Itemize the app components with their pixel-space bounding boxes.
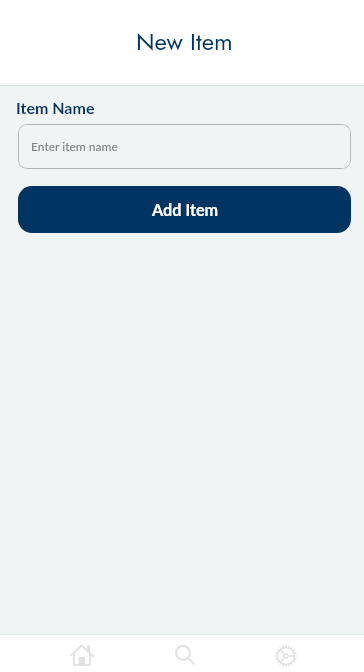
button[interactable]: Add Item: [18, 186, 351, 233]
staticText: New Item: [136, 24, 233, 59]
staticText: Item Name: [16, 98, 95, 117]
staticText: Add Item: [152, 200, 219, 219]
button[interactable]: Home: [56, 635, 108, 672]
button[interactable]: Enter item name: [18, 124, 351, 169]
button[interactable]: Search: [158, 635, 210, 672]
staticText: Enter item name: [31, 139, 118, 153]
button[interactable]: Settings: [260, 635, 312, 672]
